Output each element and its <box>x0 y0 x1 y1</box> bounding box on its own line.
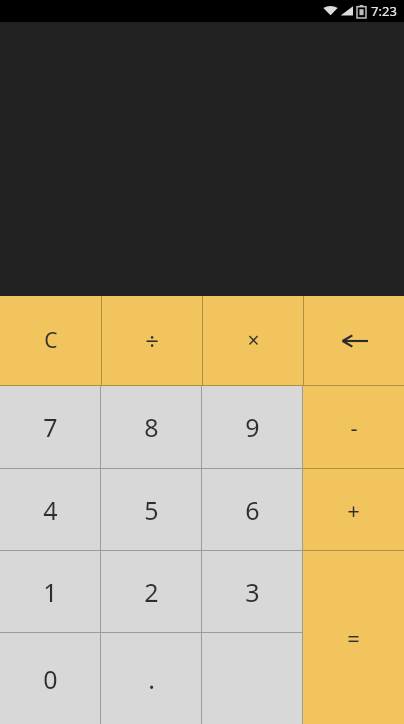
button[interactable]: ÷ <box>102 296 202 385</box>
staticText: 3 <box>245 575 260 609</box>
button[interactable]: C <box>0 296 101 385</box>
button[interactable]: 6 <box>202 469 302 550</box>
button[interactable]: 7 <box>0 386 100 468</box>
button[interactable]: = <box>303 551 404 724</box>
staticText: × <box>247 326 260 355</box>
staticText: 8 <box>144 410 159 444</box>
button[interactable]: Backspace <box>304 296 404 385</box>
button[interactable]: 3 <box>202 551 302 632</box>
button[interactable]: 0 <box>0 633 100 724</box>
staticText: + <box>347 495 360 525</box>
button[interactable]: 4 <box>0 469 100 550</box>
staticText: 0 <box>43 662 58 696</box>
button[interactable]: 5 <box>101 469 201 550</box>
staticText: 7:23 <box>371 2 397 20</box>
staticText: 6 <box>245 493 260 527</box>
staticText: 5 <box>144 493 159 527</box>
staticText: 9 <box>245 410 260 444</box>
button[interactable]: 8 <box>101 386 201 468</box>
staticText: - <box>350 412 358 442</box>
button[interactable]: 1 <box>0 551 100 632</box>
button[interactable]: 2 <box>101 551 201 632</box>
staticText: 1 <box>43 575 58 609</box>
staticText: C <box>44 326 58 355</box>
staticText: 7 <box>43 410 58 444</box>
staticText: ÷ <box>145 324 159 357</box>
staticText: = <box>347 623 360 653</box>
button[interactable]: + <box>303 469 404 550</box>
staticText: . <box>148 662 155 696</box>
staticText: 2 <box>144 575 159 609</box>
button[interactable]: . <box>101 633 201 724</box>
button[interactable]: × <box>203 296 303 385</box>
staticText: 4 <box>43 493 58 527</box>
button[interactable]: 9 <box>202 386 302 468</box>
button[interactable]: - <box>303 386 404 468</box>
